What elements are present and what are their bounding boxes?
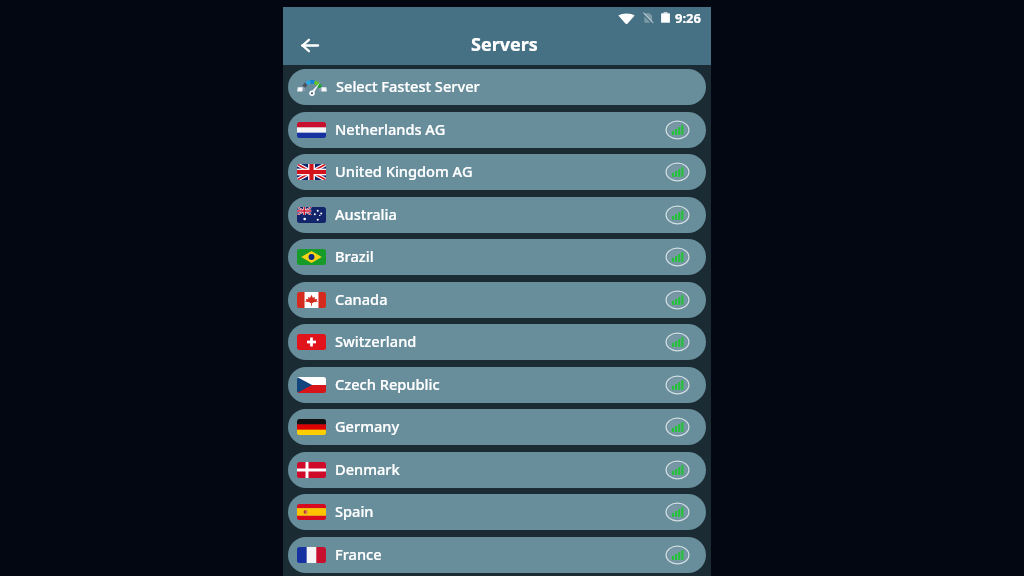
staticText: Netherlands AG	[335, 119, 446, 139]
button[interactable]: Denmark	[288, 452, 706, 488]
button[interactable]: Signal strength	[662, 285, 692, 315]
staticText: Spain	[335, 501, 374, 521]
button[interactable]: Signal strength	[662, 497, 692, 527]
button[interactable]: Brazil	[288, 239, 706, 275]
staticText: Germany	[335, 416, 400, 436]
button[interactable]: Signal strength	[662, 242, 692, 272]
button[interactable]: Signal strength	[662, 115, 692, 145]
staticText: Canada	[335, 289, 388, 309]
staticText: Servers	[471, 32, 538, 57]
staticText: Switzerland	[335, 331, 417, 351]
button[interactable]: Canada	[288, 282, 706, 318]
staticText: United Kingdom AG	[335, 161, 473, 181]
button[interactable]: Signal strength	[662, 412, 692, 442]
button[interactable]: Signal strength	[662, 157, 692, 187]
staticText: Australia	[335, 204, 397, 224]
staticText: Czech Republic	[335, 374, 440, 394]
staticText: 9:26	[675, 9, 701, 27]
button[interactable]: France	[288, 537, 706, 573]
button[interactable]: Back	[295, 30, 325, 60]
button[interactable]: Australia	[288, 197, 706, 233]
staticText: France	[335, 544, 382, 564]
staticText: Select Fastest Server	[336, 76, 480, 96]
button[interactable]: Signal strength	[662, 200, 692, 230]
button[interactable]: Netherlands AG	[288, 112, 706, 148]
button[interactable]: Select Fastest Server	[288, 69, 706, 105]
staticText: Brazil	[335, 246, 374, 266]
button[interactable]: Signal strength	[662, 455, 692, 485]
button[interactable]: Czech Republic	[288, 367, 706, 403]
button[interactable]: Signal strength	[662, 370, 692, 400]
button[interactable]: Germany	[288, 409, 706, 445]
button[interactable]: Switzerland	[288, 324, 706, 360]
button[interactable]: United Kingdom AG	[288, 154, 706, 190]
button[interactable]: Signal strength	[662, 327, 692, 357]
button[interactable]: Signal strength	[662, 540, 692, 570]
staticText: Denmark	[335, 459, 400, 479]
button[interactable]: Spain	[288, 494, 706, 530]
